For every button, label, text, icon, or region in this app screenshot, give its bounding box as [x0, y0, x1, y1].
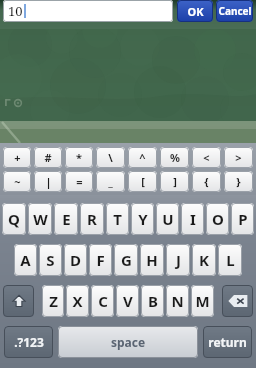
button[interactable]: C: [91, 285, 114, 317]
staticText: M: [195, 291, 210, 311]
staticText: D: [70, 250, 81, 270]
staticText: Cancel: [218, 4, 252, 18]
staticText: >: [235, 150, 242, 165]
button[interactable]: Cancel: [216, 0, 253, 22]
staticText: A: [20, 250, 31, 270]
staticText: <: [203, 150, 210, 165]
button[interactable]: V: [116, 285, 139, 317]
button[interactable]: X: [66, 285, 89, 317]
staticText: =: [76, 174, 83, 189]
staticText: Y: [138, 209, 148, 229]
button[interactable]: .?123: [4, 326, 53, 358]
button[interactable]: Y: [131, 203, 154, 235]
button[interactable]: W: [28, 203, 52, 235]
staticText: [: [141, 174, 145, 189]
staticText: L: [226, 250, 235, 270]
button[interactable]: O: [206, 203, 229, 235]
button[interactable]: L: [218, 244, 242, 276]
button[interactable]: I: [181, 203, 204, 235]
staticText: K: [199, 250, 209, 270]
button[interactable]: K: [192, 244, 216, 276]
button[interactable]: J: [166, 244, 190, 276]
button[interactable]: OK: [177, 0, 213, 22]
staticText: ]: [173, 174, 177, 189]
button[interactable]: P: [231, 203, 254, 235]
button[interactable]: <: [192, 147, 221, 168]
staticText: S: [46, 250, 55, 270]
staticText: R: [87, 209, 97, 229]
button[interactable]: B: [141, 285, 164, 317]
button[interactable]: N: [166, 285, 189, 317]
button[interactable]: #: [34, 147, 62, 168]
button[interactable]: 10: [3, 0, 173, 22]
staticText: W: [33, 209, 48, 229]
button[interactable]: \: [96, 147, 125, 168]
button[interactable]: E: [54, 203, 78, 235]
button[interactable]: D: [64, 244, 87, 276]
button[interactable]: _: [96, 171, 125, 192]
staticText: E: [62, 209, 71, 229]
button[interactable]: *: [65, 147, 93, 168]
staticText: H: [146, 250, 158, 270]
staticText: |: [45, 174, 52, 189]
button[interactable]: |: [34, 171, 62, 192]
staticText: G: [121, 250, 132, 270]
staticText: V: [123, 291, 133, 311]
staticText: F: [96, 250, 105, 270]
button[interactable]: return: [203, 326, 252, 358]
button[interactable]: }: [224, 171, 253, 192]
button[interactable]: =: [65, 171, 93, 192]
staticText: {: [204, 174, 209, 189]
button[interactable]: G: [114, 244, 138, 276]
button[interactable]: S: [39, 244, 62, 276]
staticText: .?123: [14, 334, 44, 350]
button[interactable]: R: [80, 203, 104, 235]
button[interactable]: M: [191, 285, 214, 317]
staticText: U: [162, 209, 174, 229]
staticText: ^: [139, 150, 146, 165]
button[interactable]: [: [128, 171, 157, 192]
staticText: %: [170, 150, 180, 165]
button[interactable]: ]: [160, 171, 189, 192]
staticText: *: [76, 150, 82, 165]
button[interactable]: Z: [42, 285, 64, 317]
staticText: ~: [14, 174, 21, 189]
staticText: _: [108, 174, 113, 189]
staticText: +: [14, 150, 21, 165]
button[interactable]: ^: [128, 147, 157, 168]
staticText: I: [190, 209, 196, 229]
staticText: X: [72, 291, 83, 311]
button[interactable]: >: [224, 147, 253, 168]
staticText: Z: [49, 291, 58, 311]
staticText: C: [98, 291, 108, 311]
staticText: 10: [8, 2, 23, 20]
button[interactable]: +: [3, 147, 31, 168]
staticText: N: [171, 291, 184, 311]
staticText: O: [212, 209, 224, 229]
button[interactable]: space: [58, 326, 198, 358]
button[interactable]: ~: [3, 171, 31, 192]
button[interactable]: Backspace: [222, 285, 253, 317]
staticText: space: [111, 334, 146, 350]
staticText: Q: [8, 209, 20, 229]
button[interactable]: {: [192, 171, 221, 192]
button[interactable]: T: [106, 203, 129, 235]
button[interactable]: A: [14, 244, 37, 276]
button[interactable]: U: [156, 203, 179, 235]
staticText: P: [238, 209, 248, 229]
staticText: #: [44, 150, 52, 165]
button[interactable]: F: [89, 244, 112, 276]
staticText: B: [148, 291, 158, 311]
staticText: return: [208, 334, 247, 350]
staticText: J: [176, 250, 181, 270]
button[interactable]: H: [140, 244, 164, 276]
staticText: OK: [187, 4, 204, 19]
staticText: T: [113, 209, 122, 229]
button[interactable]: Shift: [3, 285, 34, 317]
staticText: }: [236, 174, 241, 189]
button[interactable]: Q: [2, 203, 26, 235]
button[interactable]: %: [160, 147, 189, 168]
staticText: \: [108, 150, 113, 165]
